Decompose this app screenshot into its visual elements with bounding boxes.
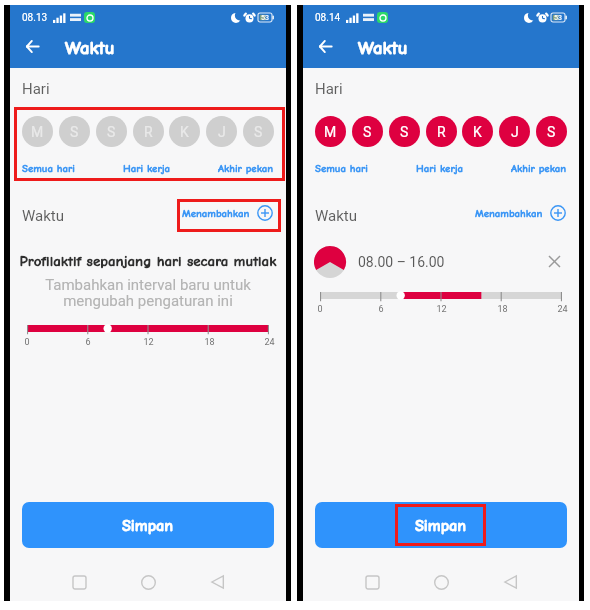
staticText: Semua hari xyxy=(22,162,75,174)
button[interactable]: K xyxy=(462,116,493,147)
staticText: 0 xyxy=(24,337,30,348)
staticText: 53 xyxy=(554,14,562,22)
button[interactable]: R xyxy=(133,116,164,147)
staticText: 12 xyxy=(143,337,154,348)
button[interactable]: Back xyxy=(476,567,545,597)
button[interactable]: Simpan xyxy=(315,502,567,548)
staticText: Waktu xyxy=(358,37,408,59)
staticText: Profilaktif sepanjang hari secara mutlak xyxy=(10,253,286,270)
button[interactable]: R xyxy=(426,116,457,147)
staticText: K xyxy=(180,124,189,140)
staticText: J xyxy=(218,124,226,140)
button[interactable]: Simpan xyxy=(22,502,274,548)
staticText: Waktu xyxy=(315,207,358,225)
button[interactable]: Hari kerja xyxy=(416,162,464,174)
staticText: Tambahkan interval baru untuk mengubah p… xyxy=(42,276,254,309)
button[interactable]: Menambahkan xyxy=(475,205,566,221)
staticText: Akhir pekan xyxy=(218,162,274,174)
staticText: 24 xyxy=(557,304,568,315)
staticText: Waktu xyxy=(22,207,65,225)
staticText: Akhir pekan xyxy=(511,162,567,174)
staticText: 24 xyxy=(264,337,275,348)
button[interactable]: S xyxy=(352,116,383,147)
button[interactable]: M xyxy=(315,116,346,147)
staticText: R xyxy=(144,124,153,140)
button[interactable]: Akhir pekan xyxy=(218,162,274,174)
staticText: 08.00 – 16.00 xyxy=(358,254,445,270)
staticText: 0 xyxy=(317,304,323,315)
staticText: Hari xyxy=(315,80,343,98)
button[interactable]: Recents xyxy=(338,567,407,597)
staticText: S xyxy=(70,124,79,140)
staticText: 53 xyxy=(261,14,269,22)
staticText: Hari kerja xyxy=(123,162,171,174)
button[interactable]: Semua hari xyxy=(22,162,75,174)
staticText: Hari xyxy=(22,80,50,98)
staticText: J xyxy=(511,124,519,140)
staticText: 18 xyxy=(497,304,508,315)
button[interactable]: Back xyxy=(14,28,50,64)
button[interactable]: Menambahkan xyxy=(182,205,273,221)
button[interactable]: J xyxy=(206,116,237,147)
button[interactable]: Semua hari xyxy=(315,162,368,174)
staticText: Menambahkan xyxy=(182,207,250,219)
staticText: 12 xyxy=(436,304,447,315)
staticText: 08.14 xyxy=(315,12,341,24)
button[interactable]: Remove interval xyxy=(542,249,566,273)
staticText: R xyxy=(437,124,446,140)
staticText: S xyxy=(107,124,116,140)
button[interactable]: S xyxy=(96,116,127,147)
staticText: 08.13 xyxy=(22,12,48,24)
button[interactable]: Hari kerja xyxy=(123,162,171,174)
button[interactable]: K xyxy=(169,116,200,147)
button[interactable]: Back xyxy=(307,28,343,64)
staticText: M xyxy=(324,124,337,140)
button[interactable]: Home xyxy=(407,567,476,597)
button[interactable]: Akhir pekan xyxy=(511,162,567,174)
staticText: S xyxy=(254,124,263,140)
button[interactable]: S xyxy=(243,116,274,147)
staticText: M xyxy=(31,124,44,140)
staticText: K xyxy=(473,124,482,140)
staticText: Waktu xyxy=(65,37,115,59)
button[interactable]: Home xyxy=(114,567,183,597)
staticText: Menambahkan xyxy=(475,207,543,219)
button[interactable]: Back xyxy=(183,567,252,597)
button[interactable]: Recents xyxy=(45,567,114,597)
staticText: Semua hari xyxy=(315,162,368,174)
staticText: Simpan xyxy=(122,516,174,535)
staticText: S xyxy=(400,124,409,140)
button[interactable]: S xyxy=(59,116,90,147)
staticText: S xyxy=(363,124,372,140)
staticText: S xyxy=(547,124,556,140)
staticText: 6 xyxy=(378,304,384,315)
staticText: Simpan xyxy=(415,516,467,535)
staticText: 6 xyxy=(85,337,91,348)
button[interactable]: S xyxy=(389,116,420,147)
button[interactable]: J xyxy=(499,116,530,147)
staticText: Hari kerja xyxy=(416,162,464,174)
button[interactable]: S xyxy=(536,116,567,147)
button[interactable]: M xyxy=(22,116,53,147)
staticText: 18 xyxy=(204,337,215,348)
